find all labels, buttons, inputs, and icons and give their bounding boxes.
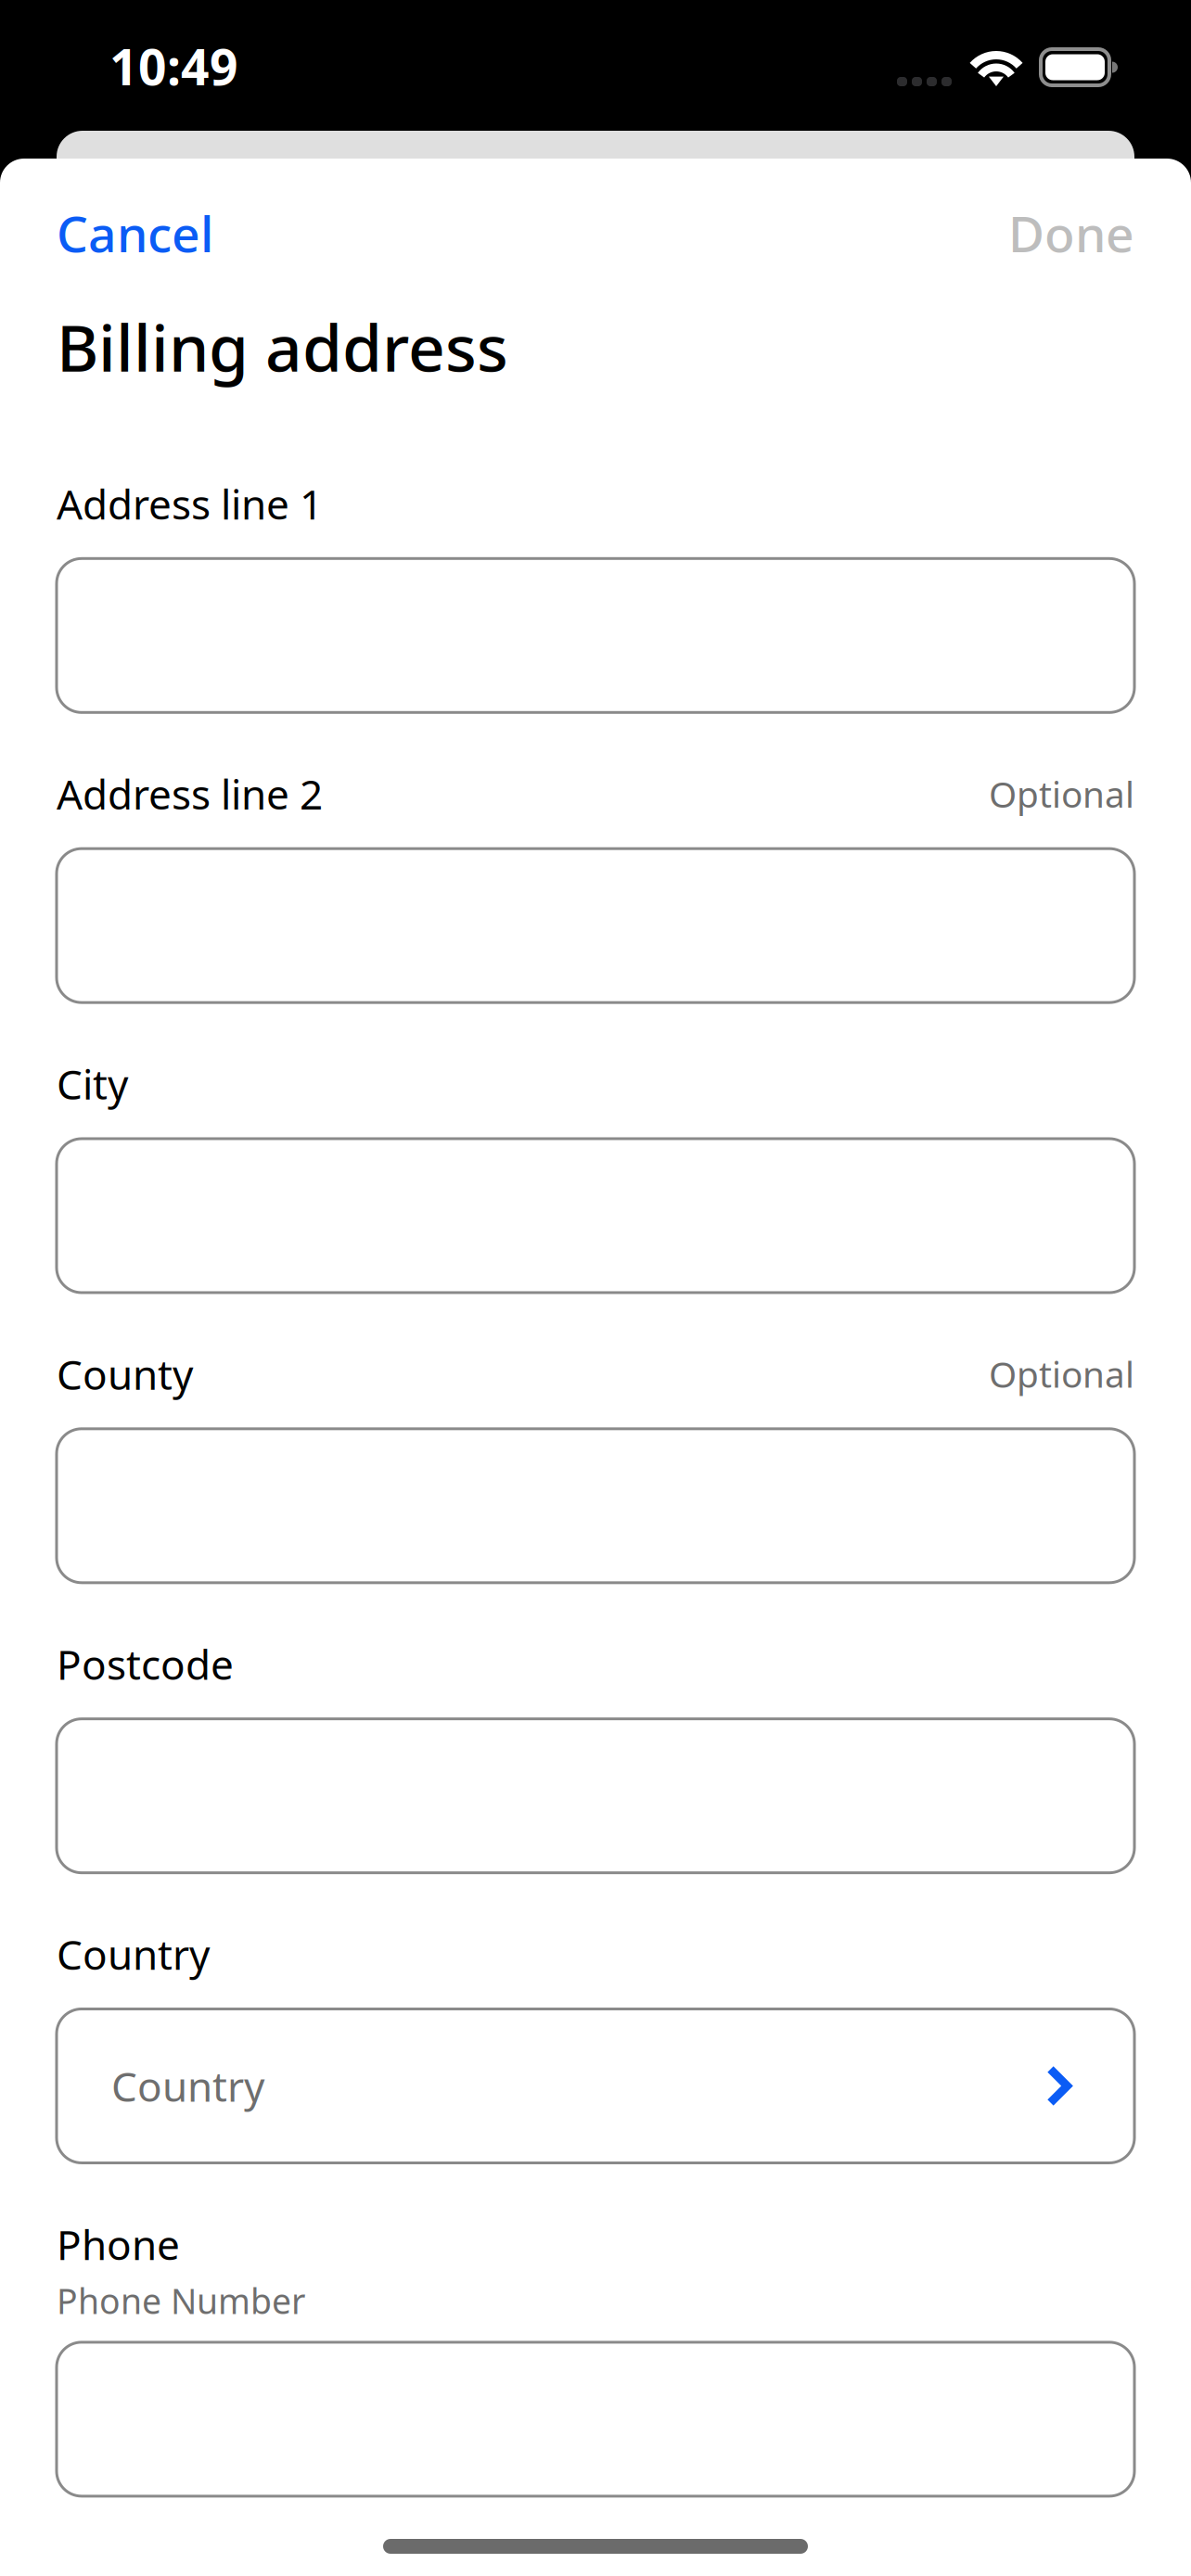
staticText: Optional (989, 770, 1134, 817)
staticText: County (57, 1347, 193, 1401)
button[interactable] (57, 1429, 1134, 1583)
button[interactable]: Done (1008, 200, 1134, 266)
button[interactable] (57, 2342, 1134, 2496)
staticText: Address line 1 (57, 477, 323, 531)
staticText: Address line 2 (57, 767, 323, 821)
staticText: Postcode (57, 1637, 234, 1691)
button[interactable]: Cancel (57, 200, 213, 266)
staticText: Country (111, 2059, 264, 2113)
button[interactable] (57, 849, 1134, 1003)
staticText: 10:49 (109, 33, 238, 99)
button[interactable] (57, 1719, 1134, 1873)
staticText: Phone (57, 2217, 180, 2271)
staticText: Phone Number (57, 2278, 305, 2324)
staticText: Optional (989, 1350, 1134, 1398)
staticText: Country (57, 1927, 210, 1981)
button[interactable]: Country (57, 2009, 1134, 2163)
staticText: Billing address (57, 304, 508, 389)
staticText: Done (1008, 200, 1134, 266)
button[interactable] (57, 1139, 1134, 1293)
staticText: Cancel (57, 200, 213, 266)
button[interactable] (57, 559, 1134, 712)
staticText: City (57, 1057, 128, 1111)
